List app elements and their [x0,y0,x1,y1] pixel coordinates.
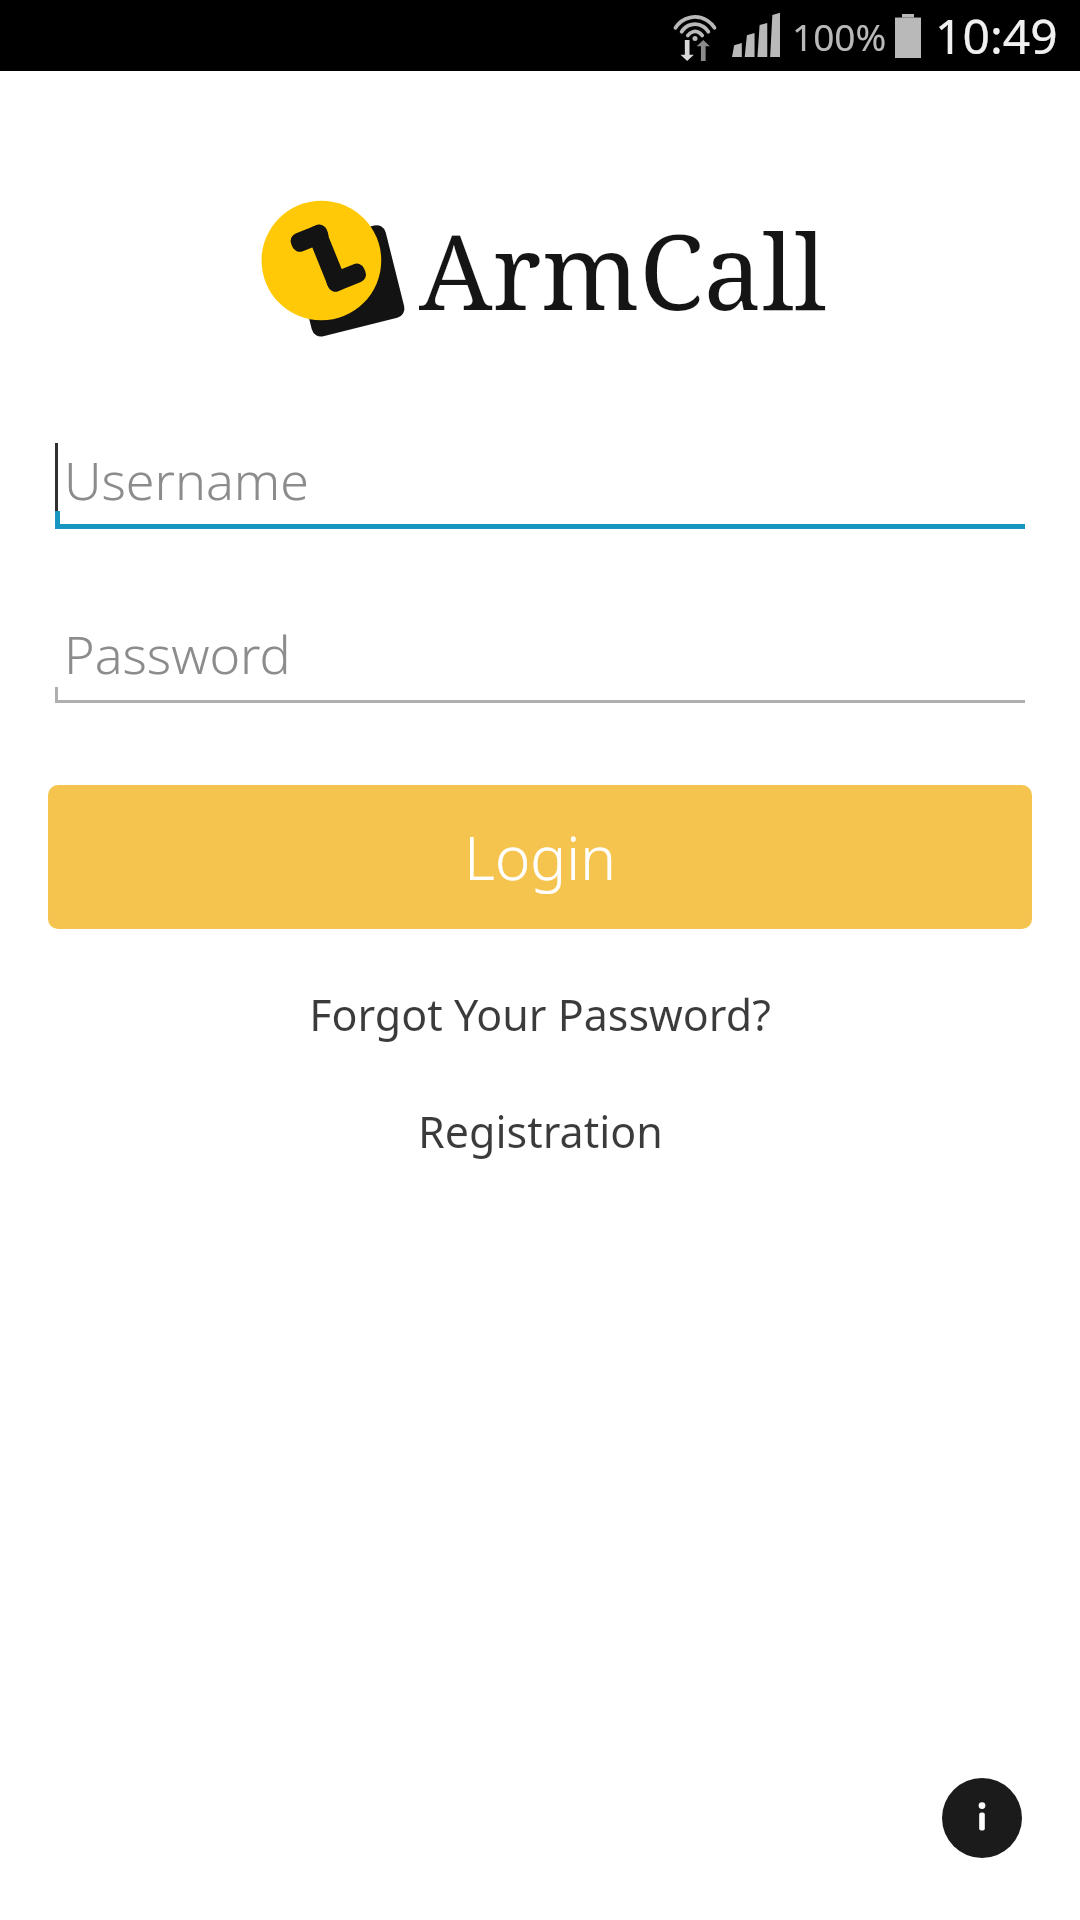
staticText: Password [64,618,291,689]
button[interactable]: Password [55,599,1025,703]
staticText: Login [464,816,616,898]
button[interactable]: Username [55,425,1025,529]
staticText: Registration [418,1102,663,1161]
staticText: ArmCall [419,199,827,341]
staticText: Username [64,444,309,515]
button[interactable]: Info [942,1778,1022,1858]
button[interactable]: Forgot Your Password? [0,975,1080,1054]
staticText: 10:49 [935,3,1058,68]
staticText: Forgot Your Password? [309,985,771,1044]
button[interactable]: Login [48,785,1032,929]
button[interactable]: Registration [0,1092,1080,1171]
staticText: 100% [792,11,887,61]
